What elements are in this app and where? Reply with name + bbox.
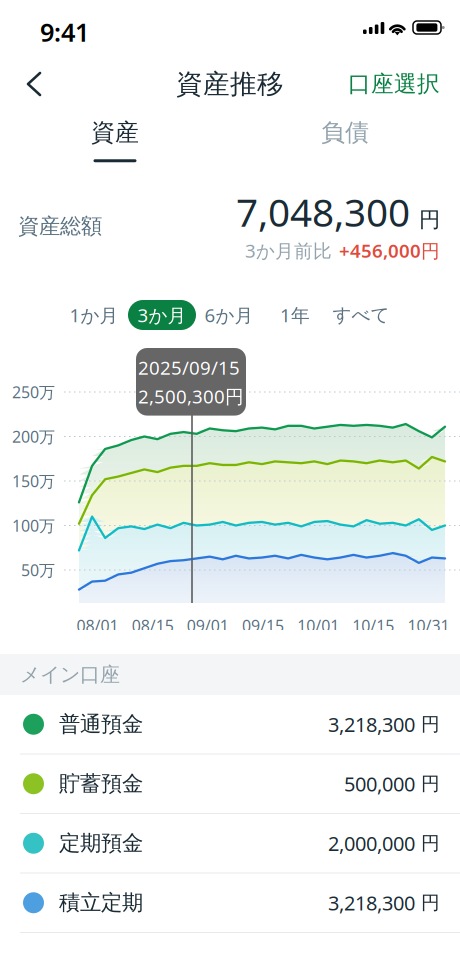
staticText: +456,000円: [339, 238, 440, 263]
staticText: 資産推移: [176, 68, 284, 100]
staticText: 貯蓄預金: [59, 771, 143, 797]
button[interactable]: 貯蓄預金: [0, 754, 460, 814]
button[interactable]: 3か月: [128, 300, 196, 330]
staticText: 09/01: [187, 615, 229, 636]
button[interactable]: 1年: [262, 300, 328, 330]
staticText: 円: [415, 772, 440, 795]
staticText: 2,500,300円: [138, 384, 244, 409]
staticText: 定期預金: [59, 830, 143, 856]
staticText: 口座選択: [348, 70, 440, 98]
staticText: 500,000: [344, 770, 415, 797]
staticText: 100万: [12, 515, 55, 536]
staticText: 250万: [12, 381, 55, 403]
staticText: 150万: [12, 470, 55, 492]
button[interactable]: 普通預金: [0, 695, 460, 754]
staticText: 2025/09/15: [138, 355, 240, 380]
staticText: 3,218,300: [328, 889, 415, 916]
staticText: 1年: [280, 303, 310, 327]
staticText: 2,000,000: [328, 830, 415, 857]
staticText: 円: [415, 832, 440, 855]
staticText: 積立定期: [59, 890, 143, 916]
staticText: 6か月: [204, 303, 253, 327]
staticText: 08/15: [132, 615, 174, 636]
button[interactable]: 口座選択: [330, 56, 460, 112]
button[interactable]: 負債: [230, 112, 460, 170]
button[interactable]: 1か月: [60, 300, 128, 330]
staticText: メイン口座: [20, 662, 120, 687]
staticText: 資産総額: [18, 213, 102, 239]
staticText: 負債: [321, 118, 369, 147]
staticText: 円: [415, 891, 440, 914]
button[interactable]: すべて: [328, 300, 394, 330]
staticText: 200万: [12, 426, 55, 447]
button[interactable]: 積立定期: [0, 873, 460, 933]
staticText: 3か月前比: [245, 238, 332, 263]
staticText: 円: [419, 206, 440, 233]
staticText: 3か月: [137, 303, 186, 327]
button[interactable]: 資産: [0, 112, 230, 170]
staticText: 08/01: [77, 615, 119, 636]
staticText: 7,048,300: [236, 186, 410, 237]
staticText: 10/15: [352, 615, 394, 636]
staticText: 1か月: [69, 303, 118, 327]
staticText: 9:41: [40, 15, 89, 49]
staticText: 3,218,300: [328, 711, 415, 738]
staticText: 円: [415, 713, 440, 736]
button[interactable]: 戻る: [0, 56, 60, 112]
staticText: 10/31: [407, 615, 449, 636]
staticText: 資産: [91, 118, 139, 147]
button[interactable]: 6か月: [196, 300, 262, 330]
staticText: 普通預金: [59, 711, 143, 737]
button[interactable]: 定期預金: [0, 814, 460, 873]
staticText: 50万: [21, 559, 55, 581]
staticText: 10/01: [297, 615, 339, 636]
staticText: 09/15: [242, 615, 284, 636]
staticText: すべて: [332, 303, 389, 326]
